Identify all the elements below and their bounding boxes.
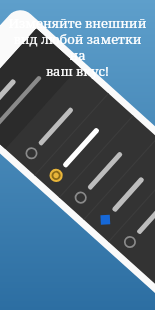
button[interactable]: Предпросмотр оформления (25, 110, 155, 310)
staticText: Изменяйте внешний вид любой заметки на в… (8, 14, 147, 79)
